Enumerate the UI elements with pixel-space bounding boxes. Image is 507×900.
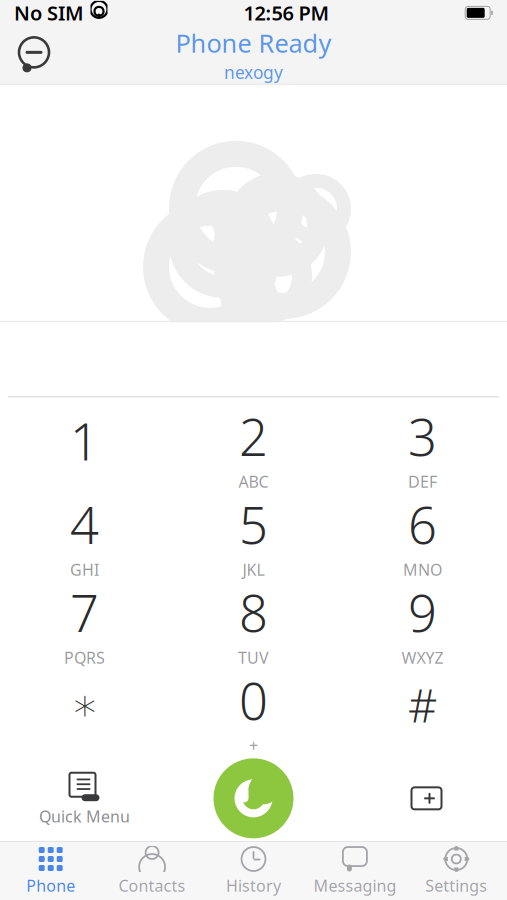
button[interactable]: Messages	[14, 35, 54, 75]
button[interactable]: Delete	[338, 755, 507, 841]
button[interactable]: 7	[0, 579, 169, 667]
staticText: MNO	[403, 559, 442, 580]
staticText: Phone Ready	[175, 26, 331, 60]
staticText: Contacts	[119, 875, 186, 896]
button[interactable]: Call	[169, 755, 338, 841]
staticText: Messaging	[313, 875, 396, 896]
staticText: 0	[239, 667, 268, 734]
staticText: WXYZ	[401, 647, 443, 668]
staticText: 4	[70, 491, 99, 558]
staticText: Quick Menu	[39, 806, 130, 827]
button[interactable]: 0	[169, 667, 338, 755]
button[interactable]: 8	[169, 579, 338, 667]
staticText: Settings	[425, 875, 487, 896]
staticText: DEF	[408, 471, 437, 492]
button[interactable]: 4	[0, 491, 169, 579]
staticText: 2	[239, 403, 268, 470]
button[interactable]: Settings	[406, 843, 507, 899]
staticText: #	[408, 675, 437, 735]
staticText: No SIM	[14, 0, 84, 26]
staticText: +	[249, 735, 258, 756]
button[interactable]: 3	[338, 403, 507, 491]
button[interactable]: ∗	[0, 667, 169, 755]
staticText: 9	[408, 579, 437, 646]
button[interactable]: 9	[338, 579, 507, 667]
staticText: Phone	[26, 875, 75, 896]
button[interactable]: Phone	[0, 843, 101, 899]
button[interactable]: 1	[0, 403, 169, 491]
staticText: History	[226, 875, 281, 896]
staticText: 7	[70, 579, 99, 646]
staticText: 3	[408, 403, 437, 470]
button[interactable]: Messaging	[304, 843, 406, 899]
button[interactable]: Contacts	[101, 843, 203, 899]
button[interactable]: 2	[169, 403, 338, 491]
button[interactable]: #	[338, 667, 507, 755]
staticText: PQRS	[64, 647, 105, 668]
button[interactable]: History	[203, 843, 304, 899]
staticText: 5	[239, 491, 268, 558]
button[interactable]: 6	[338, 491, 507, 579]
staticText: JKL	[242, 559, 264, 580]
staticText: 6	[408, 491, 437, 558]
staticText: TUV	[238, 647, 269, 668]
button[interactable]: Quick Menu	[0, 755, 169, 841]
staticText: 8	[239, 579, 268, 646]
staticText: nexogy	[224, 61, 283, 84]
staticText: ∗	[70, 679, 98, 731]
staticText: 1	[70, 407, 99, 474]
staticText: ABC	[238, 471, 268, 492]
staticText: GHI	[70, 559, 99, 580]
button[interactable]: 5	[169, 491, 338, 579]
staticText: 12:56 PM	[243, 0, 329, 26]
